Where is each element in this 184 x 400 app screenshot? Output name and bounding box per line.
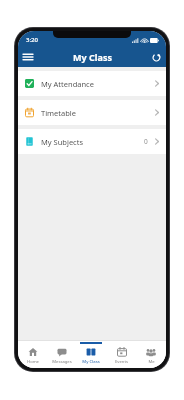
staticText: Messages [52, 359, 72, 365]
button[interactable]: Me [136, 341, 166, 368]
button[interactable]: My Subjects [18, 129, 166, 154]
button[interactable]: Open navigation menu [18, 47, 38, 67]
button[interactable]: Timetable [18, 100, 166, 125]
staticText: Timetable [41, 108, 77, 118]
staticText: Me [148, 359, 155, 365]
button[interactable]: My Attendance [18, 71, 166, 96]
button[interactable]: Refresh [146, 47, 166, 67]
button[interactable]: Messages [47, 341, 76, 368]
staticText: My Class [82, 359, 100, 365]
staticText: My Class [73, 51, 112, 63]
button[interactable]: Events [106, 341, 136, 368]
button[interactable]: Home [18, 341, 47, 368]
staticText: 0 [144, 137, 148, 146]
staticText: My Attendance [41, 79, 94, 89]
staticText: Home [27, 359, 39, 365]
staticText: Events [115, 359, 128, 365]
staticText: 3:20 [26, 36, 38, 44]
button[interactable]: My Class [76, 341, 106, 368]
staticText: My Subjects [41, 137, 84, 147]
